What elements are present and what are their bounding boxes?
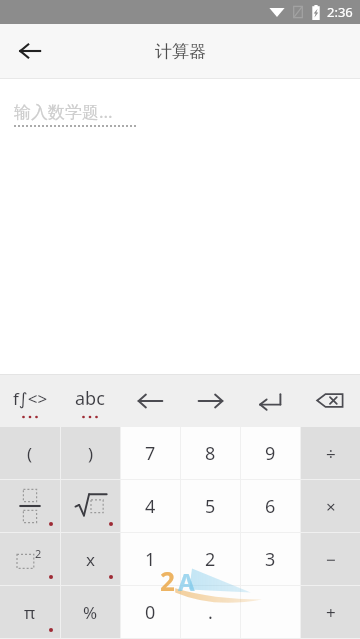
staticText: 5	[205, 494, 216, 519]
button[interactable]: −	[301, 533, 360, 585]
button[interactable]: x	[61, 533, 120, 585]
staticText: %	[83, 601, 98, 624]
staticText: 输入数学题...	[14, 100, 113, 123]
staticText: 7	[145, 441, 156, 466]
button[interactable]: 9	[241, 427, 300, 479]
staticText: 2	[160, 563, 175, 598]
staticText: 4	[145, 494, 156, 519]
button[interactable]: Fraction	[0, 480, 60, 532]
button[interactable]: ×	[301, 480, 360, 532]
staticText: 0	[145, 600, 156, 625]
staticText: ÷	[326, 442, 336, 465]
staticText: ×	[326, 495, 336, 518]
button[interactable]: 5	[181, 480, 240, 532]
button[interactable]	[241, 586, 300, 638]
staticText: π	[24, 601, 36, 624]
staticText: 3	[265, 547, 276, 572]
button[interactable]: .	[181, 586, 240, 638]
staticText: 6	[265, 494, 276, 519]
button[interactable]: Enter	[240, 374, 300, 427]
staticText: f∫<>	[13, 387, 48, 410]
staticText: (	[27, 442, 33, 465]
button[interactable]: 0	[121, 586, 180, 638]
button[interactable]: 7	[121, 427, 180, 479]
staticText: 9	[265, 441, 276, 466]
staticText: 2	[205, 547, 216, 572]
staticText: 8	[205, 441, 216, 466]
staticText: +	[326, 601, 336, 624]
button[interactable]: abc	[60, 374, 120, 427]
button[interactable]: Square	[0, 533, 60, 585]
staticText: A	[178, 565, 195, 598]
button[interactable]: 2	[181, 533, 240, 585]
staticText: 计算器	[155, 41, 206, 62]
button[interactable]: 8	[181, 427, 240, 479]
staticText: 1	[145, 547, 156, 572]
button[interactable]: %	[61, 586, 120, 638]
button[interactable]: )	[61, 427, 120, 479]
button[interactable]: 4	[121, 480, 180, 532]
button[interactable]: Back	[6, 27, 54, 75]
button[interactable]: 1	[121, 533, 180, 585]
button[interactable]: f∫<>	[0, 374, 60, 427]
staticText: .	[208, 600, 213, 625]
button[interactable]: Square root	[61, 480, 120, 532]
button[interactable]: Backspace	[300, 374, 360, 427]
button[interactable]: Move left	[120, 374, 180, 427]
button[interactable]: 6	[241, 480, 300, 532]
button[interactable]: (	[0, 427, 60, 479]
button[interactable]: Move right	[180, 374, 240, 427]
button[interactable]: π	[0, 586, 60, 638]
button[interactable]: ÷	[301, 427, 360, 479]
button[interactable]: +	[301, 586, 360, 638]
staticText: x	[86, 548, 95, 571]
button[interactable]: 3	[241, 533, 300, 585]
staticText: abc	[75, 386, 105, 411]
button[interactable]: 输入数学题...	[14, 100, 136, 127]
staticText: 2:36	[327, 3, 353, 21]
staticText: −	[326, 548, 336, 571]
staticText: 2	[35, 546, 42, 561]
staticText: )	[88, 442, 94, 465]
